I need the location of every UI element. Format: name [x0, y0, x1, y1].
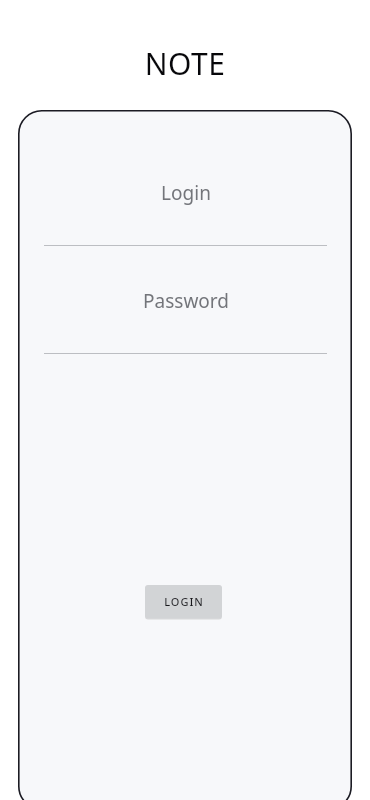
button[interactable]: Login: [44, 168, 327, 246]
staticText: LOGIN: [164, 594, 204, 609]
button[interactable]: LOGIN: [145, 585, 222, 618]
button[interactable]: Password: [44, 276, 327, 354]
staticText: NOTE: [0, 43, 370, 84]
staticText: Password: [143, 288, 229, 314]
staticText: Login: [161, 180, 211, 206]
